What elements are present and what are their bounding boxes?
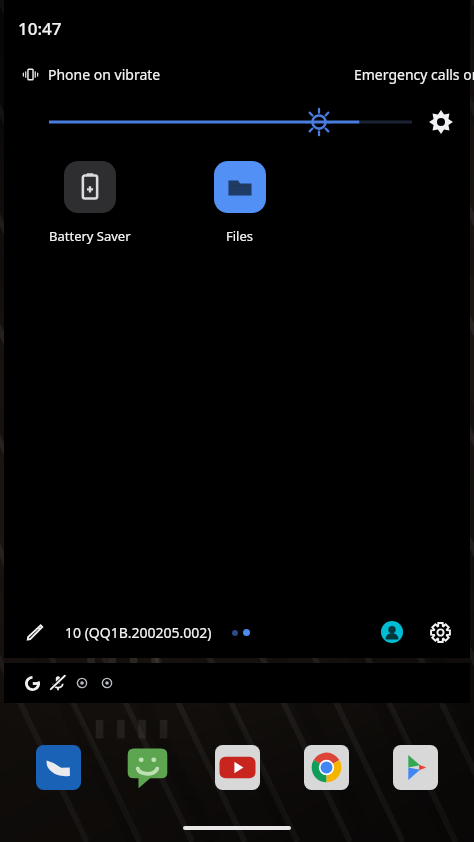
button[interactable]: Chrome	[304, 745, 349, 790]
button[interactable]: Battery Saver	[15, 161, 165, 245]
button[interactable]: Auto brightness	[426, 107, 456, 137]
button[interactable]: Files	[165, 161, 315, 245]
staticText: Phone on vibrate	[48, 65, 161, 84]
staticText: Files	[226, 227, 254, 245]
staticText: Emergency calls only	[354, 65, 474, 84]
button[interactable]: Brightness	[49, 105, 412, 139]
staticText: Battery Saver	[49, 227, 131, 245]
button[interactable]: Phone	[36, 745, 81, 790]
button[interactable]: YouTube	[215, 745, 260, 790]
staticText: 10 (QQ1B.200205.002)	[65, 623, 212, 642]
button[interactable]: Play Store	[393, 745, 438, 790]
button[interactable]: Settings	[426, 618, 454, 646]
button[interactable]: Edit tiles	[22, 619, 48, 645]
staticText: 10:47	[18, 17, 62, 40]
button[interactable]: User	[378, 618, 406, 646]
button[interactable]: Messages	[125, 745, 170, 790]
